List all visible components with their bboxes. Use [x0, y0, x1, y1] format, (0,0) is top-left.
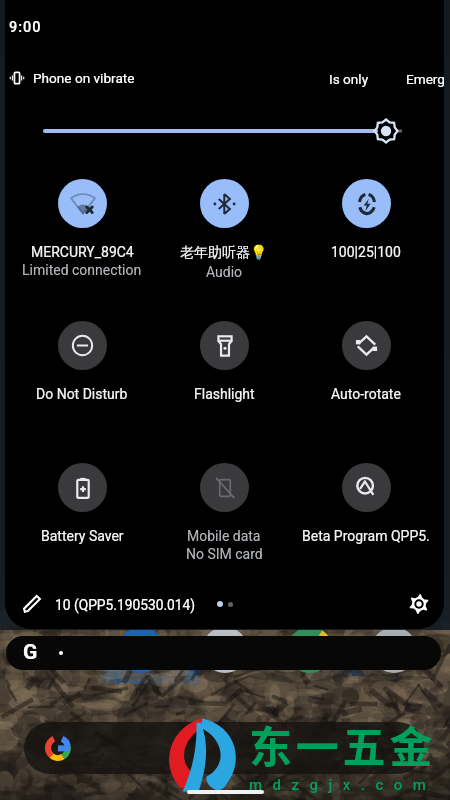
button[interactable]: MERCURY_89C4	[11, 167, 153, 278]
button[interactable]: 老年助听器💡	[153, 167, 295, 280]
button[interactable]: Beta Program QPP5.	[295, 451, 437, 544]
staticText: Emergency	[406, 71, 444, 87]
button[interactable]: Flashlight	[153, 309, 295, 402]
button[interactable]: Auto-rotate	[295, 309, 437, 402]
button[interactable]: Search	[6, 636, 441, 670]
staticText: 东一五金	[249, 713, 437, 775]
staticText: MERCURY_89C4	[31, 244, 134, 260]
staticText: Flashlight	[194, 386, 255, 402]
button[interactable]: Battery Saver	[11, 451, 153, 544]
button[interactable]: 100|25|100	[295, 167, 437, 260]
staticText: Battery Saver	[41, 528, 124, 544]
staticText: 老年助听器💡	[180, 244, 268, 262]
staticText: Audio	[206, 264, 243, 280]
staticText: Do Not Disturb	[36, 386, 128, 402]
staticText: 9:00	[9, 19, 42, 36]
staticText: No SIM card	[186, 546, 263, 562]
staticText: 10 (QPP5.190530.014)	[55, 597, 196, 613]
staticText: Is only	[329, 71, 369, 87]
staticText: mdzgjx.com	[249, 776, 437, 794]
staticText: 100|25|100	[331, 244, 401, 260]
button[interactable]: Settings	[405, 590, 433, 618]
staticText: Mobile data	[187, 528, 261, 544]
button[interactable]: Edit tiles	[18, 590, 46, 618]
button[interactable]: Mobile data	[153, 451, 295, 562]
staticText: Auto-rotate	[331, 386, 401, 402]
staticText: Phone on vibrate	[33, 70, 135, 86]
staticText: Limited connection	[22, 262, 142, 278]
staticText: G	[23, 640, 38, 665]
staticText: Beta Program QPP5.	[302, 528, 430, 544]
button[interactable]: Do Not Disturb	[11, 309, 153, 402]
